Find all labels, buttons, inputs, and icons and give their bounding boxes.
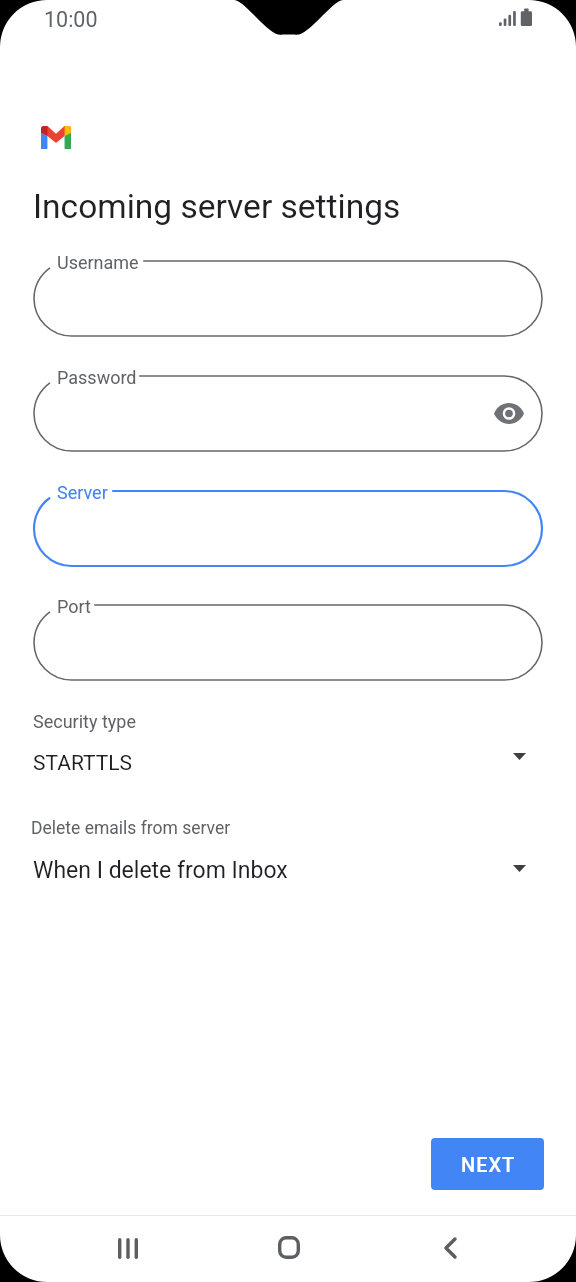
staticText: Port xyxy=(57,596,91,617)
staticText: Server xyxy=(57,482,108,503)
button[interactable]: Home xyxy=(258,1215,318,1282)
button[interactable]: Username xyxy=(34,261,542,336)
staticText: STARTTLS xyxy=(33,751,133,776)
button[interactable]: NEXT xyxy=(431,1138,544,1190)
button[interactable]: Recent apps xyxy=(98,1215,158,1282)
button[interactable]: Security type xyxy=(0,711,576,791)
button[interactable]: Server xyxy=(34,491,542,566)
button[interactable]: Delete emails from server xyxy=(0,818,576,897)
button[interactable]: Show password xyxy=(483,392,535,435)
staticText: When I delete from Inbox xyxy=(33,857,288,884)
staticText: Username xyxy=(57,252,139,273)
staticText: NEXT xyxy=(461,1153,516,1176)
staticText: Password xyxy=(57,367,137,388)
button[interactable]: Password xyxy=(34,376,542,451)
button[interactable]: Back xyxy=(420,1215,480,1282)
staticText: Delete emails from server xyxy=(31,818,231,839)
staticText: 10:00 xyxy=(44,7,98,32)
staticText: Security type xyxy=(33,711,136,732)
staticText: Incoming server settings xyxy=(33,187,401,226)
button[interactable]: Port xyxy=(34,605,542,680)
